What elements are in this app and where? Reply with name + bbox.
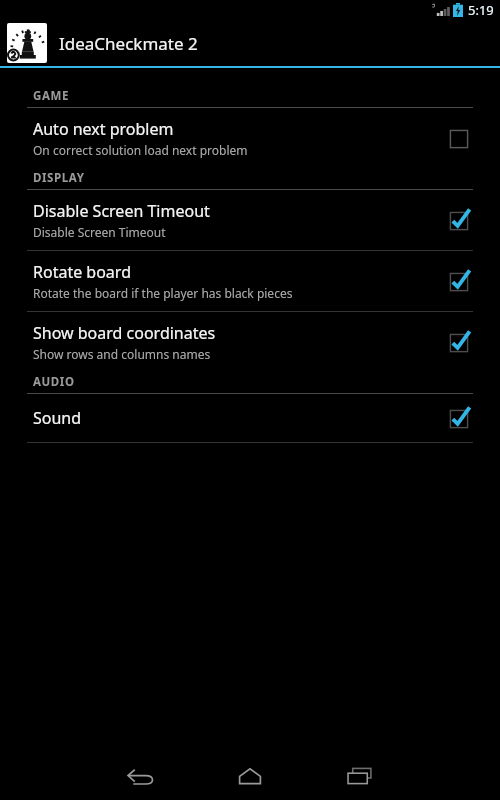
button[interactable]: Sound <box>0 394 500 442</box>
staticText: Sound <box>33 407 82 429</box>
staticText: Disable Screen Timeout <box>33 200 210 222</box>
staticText: Auto next problem <box>33 118 174 140</box>
staticText: 5:19 <box>468 1 494 19</box>
staticText: AUDIO <box>33 374 75 390</box>
staticText: Rotate board <box>33 261 131 283</box>
button[interactable]: Checked <box>444 205 474 235</box>
button[interactable]: Show board coordinates <box>0 312 500 372</box>
staticText: GAME <box>33 88 69 104</box>
staticText: Show board coordinates <box>33 322 216 344</box>
button[interactable]: Back <box>85 752 195 800</box>
staticText: Show rows and columns names <box>33 346 211 362</box>
staticText: DISPLAY <box>33 170 85 186</box>
button[interactable]: Unchecked <box>444 123 474 153</box>
button[interactable]: Disable Screen Timeout <box>0 190 500 250</box>
button[interactable]: Home <box>195 752 305 800</box>
other: App icon <box>7 23 47 63</box>
button[interactable]: Rotate board <box>0 251 500 311</box>
button[interactable]: Auto next problem <box>0 108 500 168</box>
staticText: On correct solution load next problem <box>33 142 248 158</box>
staticText: IdeaCheckmate 2 <box>59 32 198 55</box>
button[interactable]: Checked <box>444 266 474 296</box>
staticText: Rotate the board if the player has black… <box>33 285 293 301</box>
button[interactable]: Checked <box>444 403 474 433</box>
button[interactable]: Recent apps <box>305 752 415 800</box>
staticText: Disable Screen Timeout <box>33 224 166 240</box>
button[interactable]: Checked <box>444 327 474 357</box>
